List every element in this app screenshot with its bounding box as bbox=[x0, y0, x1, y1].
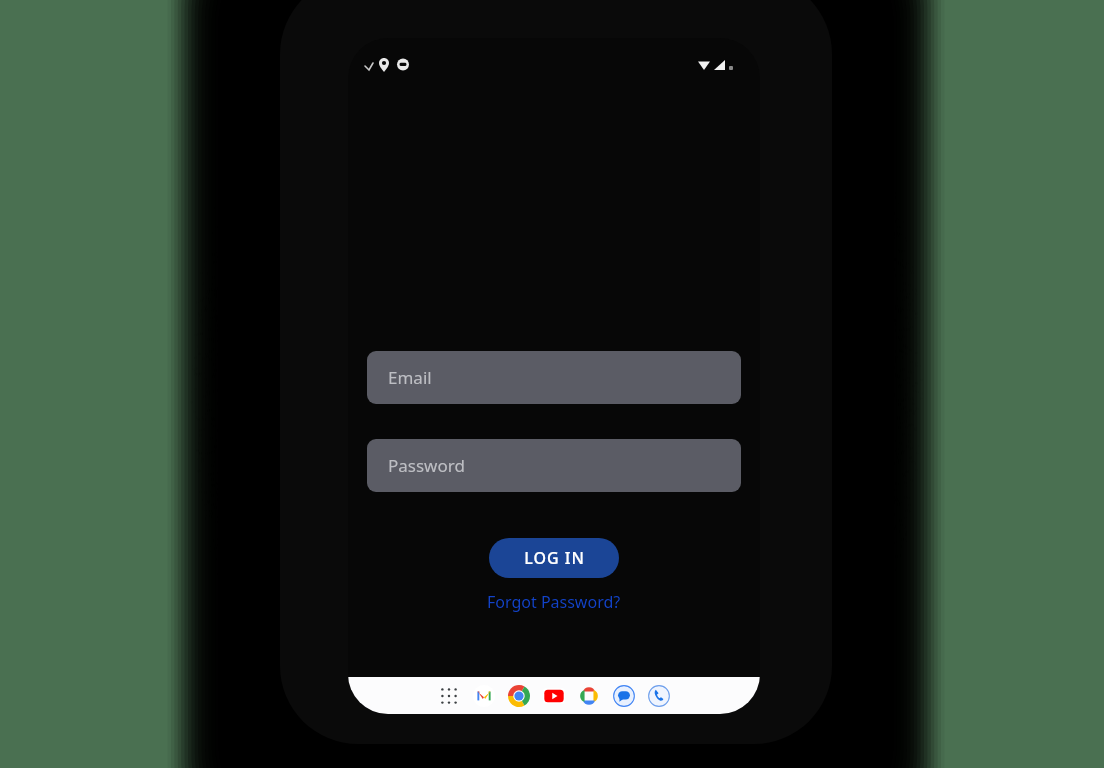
button[interactable]: YouTube bbox=[541, 683, 567, 709]
staticText: Forgot Password? bbox=[487, 591, 621, 613]
button[interactable]: Photos bbox=[576, 683, 602, 709]
button[interactable]: Chrome bbox=[506, 683, 532, 709]
button[interactable]: Phone bbox=[646, 683, 672, 709]
button[interactable]: Gmail bbox=[471, 683, 497, 709]
button[interactable]: Messages bbox=[611, 683, 637, 709]
staticText: Password bbox=[388, 454, 465, 477]
button[interactable]: LOG IN bbox=[489, 538, 619, 578]
button[interactable]: Email bbox=[367, 351, 741, 404]
staticText: LOG IN bbox=[524, 547, 585, 569]
button[interactable]: Password bbox=[367, 439, 741, 492]
button[interactable]: Forgot Password? bbox=[481, 588, 627, 616]
staticText: Email bbox=[388, 366, 432, 389]
button[interactable]: Apps bbox=[436, 683, 462, 709]
